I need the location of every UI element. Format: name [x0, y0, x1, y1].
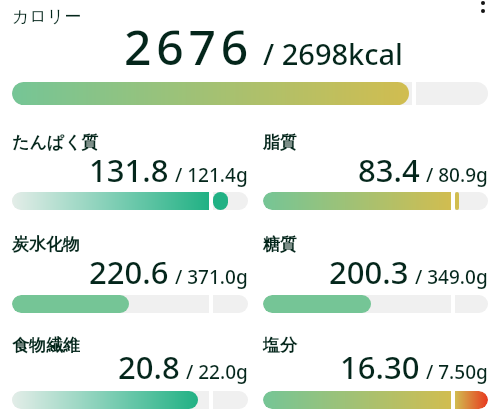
staticText: 220.6: [89, 251, 169, 293]
staticText: / 7.50g: [426, 359, 488, 385]
staticText: / 349.0g: [415, 264, 488, 290]
staticText: / 121.4g: [175, 162, 248, 188]
button[interactable]: たんぱく質: [12, 132, 248, 214]
staticText: 131.8: [89, 149, 169, 191]
staticText: 200.3: [329, 251, 409, 293]
staticText: たんぱく質: [12, 132, 99, 153]
button[interactable]: 炭水化物: [12, 234, 248, 317]
button[interactable]: 塩分: [263, 335, 488, 413]
staticText: / 2698kcal: [263, 34, 403, 73]
staticText: 脂質: [263, 132, 297, 153]
staticText: 塩分: [263, 335, 297, 356]
staticText: 83.4: [358, 149, 420, 191]
staticText: / 80.9g: [426, 162, 488, 188]
staticText: 糖質: [263, 234, 297, 255]
staticText: 食物繊維: [12, 335, 80, 356]
button[interactable]: 食物繊維: [12, 335, 248, 413]
button[interactable]: 糖質: [263, 234, 488, 317]
staticText: カロリー: [12, 6, 82, 27]
staticText: 炭水化物: [12, 234, 80, 255]
staticText: 16.30: [340, 346, 420, 388]
button[interactable]: More options: [469, 0, 497, 17]
staticText: 2676: [124, 14, 254, 79]
staticText: / 371.0g: [175, 264, 248, 290]
button[interactable]: 脂質: [263, 132, 488, 214]
staticText: 20.8: [118, 346, 180, 388]
staticText: / 22.0g: [186, 359, 248, 385]
